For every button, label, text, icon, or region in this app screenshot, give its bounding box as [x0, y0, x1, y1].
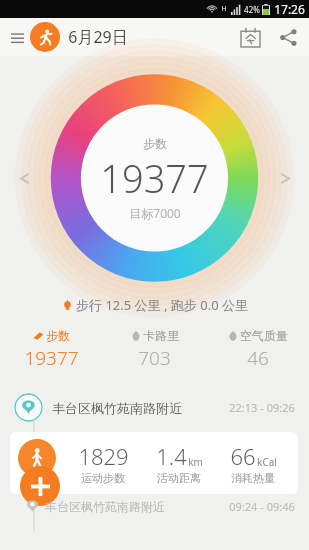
staticText: 42%	[244, 4, 260, 15]
button[interactable]: Profile	[30, 22, 60, 52]
staticText: kCal	[257, 455, 277, 469]
staticText: 66	[230, 441, 256, 471]
staticText: 17:26	[274, 1, 305, 17]
staticText: 消耗热量	[231, 471, 275, 485]
button[interactable]: 1829	[10, 432, 298, 494]
button[interactable]: Menu	[6, 26, 28, 48]
staticText: 703	[138, 345, 171, 371]
staticText: km	[188, 455, 203, 469]
button[interactable]: Add activity	[20, 466, 60, 506]
staticText: 丰台区枫竹苑南路附近	[52, 400, 182, 416]
staticText: 6月29日	[68, 26, 128, 48]
staticText: 09:24 - 09:46	[229, 499, 295, 514]
staticText: 丰台区枫竹苑南路附近	[45, 499, 165, 514]
staticText: 步数	[46, 328, 70, 343]
staticText: 19377	[100, 152, 209, 204]
staticText: 46	[247, 345, 269, 371]
staticText: 步数	[143, 136, 167, 151]
button[interactable]: 步数	[0, 326, 103, 373]
button[interactable]: Previous day	[12, 165, 38, 191]
button[interactable]: Share	[273, 22, 303, 52]
staticText: 22:13 - 09:26	[229, 400, 295, 415]
button[interactable]: Today calendar	[235, 22, 265, 52]
button[interactable]: Next day	[271, 165, 297, 191]
staticText: 空气质量	[240, 328, 288, 343]
staticText: 步行 12.5 公里 , 跑步 0.0 公里	[76, 296, 248, 314]
staticText: 运动步数	[81, 471, 125, 485]
staticText: 1829	[78, 441, 129, 471]
staticText: H	[221, 4, 227, 14]
button[interactable]: 丰台区枫竹苑南路附近	[0, 393, 309, 422]
staticText: 目标7000	[129, 205, 181, 221]
staticText: 活动距离	[157, 471, 201, 485]
staticText: 卡路里	[143, 328, 179, 343]
staticText: 19377	[24, 345, 79, 371]
staticText: 1.4	[156, 441, 187, 471]
button[interactable]: 丰台区枫竹苑南路附近	[0, 499, 309, 514]
button[interactable]: 卡路里	[103, 326, 206, 373]
button[interactable]: 空气质量	[206, 326, 309, 373]
button[interactable]: Walking activity	[18, 439, 56, 477]
